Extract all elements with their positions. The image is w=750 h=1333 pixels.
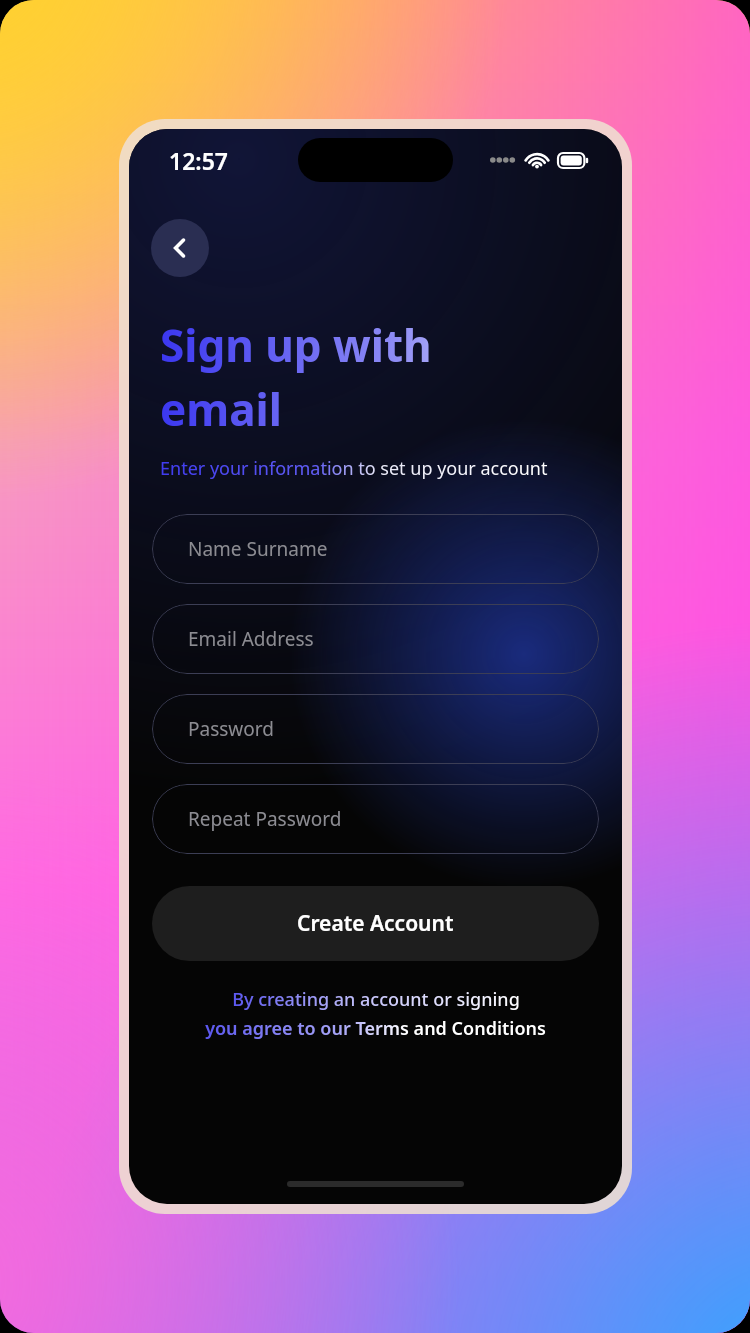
staticText: Enter your information to set up your ac… xyxy=(160,456,548,481)
button[interactable]: Email Address xyxy=(152,604,599,674)
staticText: Repeat Password xyxy=(188,806,342,832)
staticText: Email Address xyxy=(188,626,314,652)
button[interactable]: Repeat Password xyxy=(152,784,599,854)
staticText: 12:57 xyxy=(169,145,228,176)
button[interactable]: you agree to our Terms and Conditions xyxy=(205,1016,546,1041)
staticText: Sign up with xyxy=(160,315,432,375)
button[interactable]: Back xyxy=(151,219,209,277)
staticText: By creating an account or signing xyxy=(232,987,520,1012)
staticText: Create Account xyxy=(297,909,454,938)
staticText: email xyxy=(160,379,282,439)
button[interactable]: Create Account xyxy=(152,886,599,961)
button[interactable]: Name Surname xyxy=(152,514,599,584)
staticText: Password xyxy=(188,716,274,742)
button[interactable]: Password xyxy=(152,694,599,764)
staticText: Name Surname xyxy=(188,536,328,562)
